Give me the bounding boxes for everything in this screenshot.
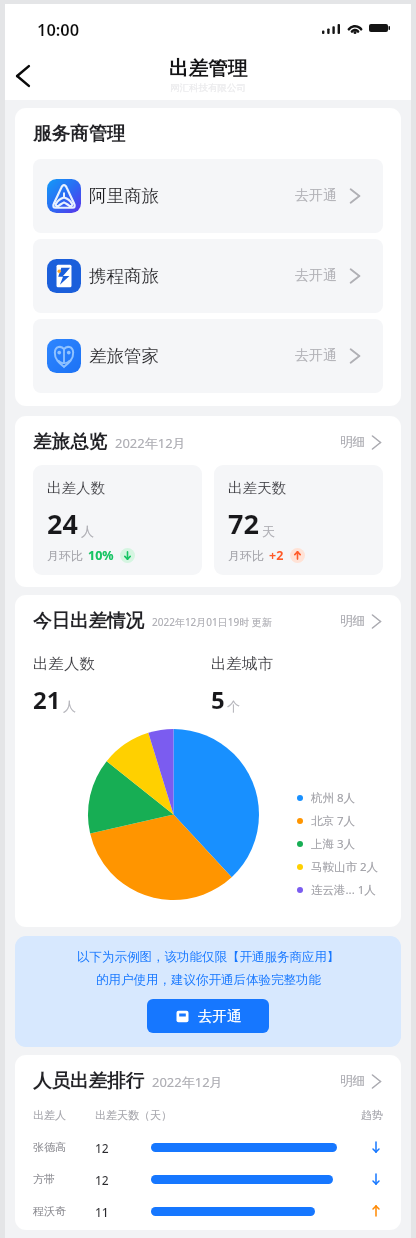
- staticText: 程沃奇: [33, 1204, 95, 1218]
- staticText: 24: [47, 505, 78, 542]
- staticText: 人员出差排行: [33, 1069, 144, 1092]
- staticText: 10%: [88, 547, 114, 564]
- staticText: 2022年12月01日19时 更新: [152, 615, 272, 629]
- staticText: 明细: [340, 613, 366, 629]
- staticText: 人: [63, 698, 76, 714]
- button[interactable]: Back: [2, 55, 44, 97]
- staticText: 去开通: [295, 267, 337, 285]
- staticText: 出差管理: [169, 56, 247, 81]
- button[interactable]: 明细: [340, 1073, 383, 1089]
- staticText: 的用户使用，建议你开通后体验完整功能: [96, 972, 321, 988]
- staticText: 出差人: [33, 1108, 95, 1122]
- staticText: 去开通: [295, 347, 337, 365]
- button[interactable]: 阿里商旅: [33, 159, 383, 233]
- staticText: 人: [81, 523, 94, 539]
- staticText: 张德高: [33, 1140, 95, 1154]
- staticText: 方带: [33, 1172, 95, 1186]
- staticText: 12: [95, 1172, 151, 1186]
- staticText: 趋势: [361, 1108, 383, 1122]
- button[interactable]: 明细: [340, 434, 383, 450]
- staticText: +2: [269, 547, 284, 564]
- staticText: 个: [227, 698, 240, 714]
- staticText: 差旅总览: [33, 430, 107, 453]
- staticText: 出差人数: [47, 479, 105, 497]
- staticText: 72: [228, 505, 259, 542]
- staticText: 10:00: [37, 18, 80, 40]
- staticText: 北京 7人: [311, 813, 356, 829]
- staticText: 去开通: [295, 187, 337, 205]
- staticText: 12: [95, 1140, 151, 1154]
- staticText: 今日出差情况: [33, 609, 144, 632]
- staticText: 11: [95, 1204, 151, 1218]
- staticText: 21: [33, 683, 61, 716]
- button[interactable]: 差旅管家: [33, 319, 383, 393]
- staticText: 连云港... 1人: [311, 882, 376, 898]
- staticText: 差旅管家: [89, 345, 159, 367]
- staticText: 网汇科技有限公司: [170, 82, 246, 94]
- staticText: 以下为示例图，该功能仅限【开通服务商应用】: [77, 949, 340, 965]
- staticText: 天: [262, 523, 275, 539]
- staticText: 上海 3人: [311, 836, 356, 852]
- staticText: 出差天数（天）: [95, 1108, 172, 1122]
- staticText: 去开通: [198, 1007, 242, 1025]
- staticText: 5: [211, 683, 225, 716]
- button[interactable]: 明细: [340, 613, 383, 629]
- staticText: 携程商旅: [89, 265, 159, 287]
- staticText: 月环比: [228, 548, 264, 563]
- staticText: 服务商管理: [33, 122, 126, 145]
- staticText: 明细: [340, 434, 366, 450]
- staticText: 月环比: [47, 548, 83, 563]
- staticText: 出差人数: [33, 654, 95, 674]
- staticText: 出差城市: [211, 654, 273, 674]
- staticText: 出差天数: [228, 479, 286, 497]
- staticText: 杭州 8人: [311, 790, 356, 806]
- staticText: 2022年12月: [115, 434, 186, 452]
- button[interactable]: 去开通: [147, 999, 269, 1033]
- staticText: 明细: [340, 1073, 366, 1089]
- staticText: 阿里商旅: [89, 185, 159, 207]
- staticText: 2022年12月: [152, 1073, 223, 1091]
- staticText: 马鞍山市 2人: [311, 859, 379, 875]
- button[interactable]: 携程商旅: [33, 239, 383, 313]
